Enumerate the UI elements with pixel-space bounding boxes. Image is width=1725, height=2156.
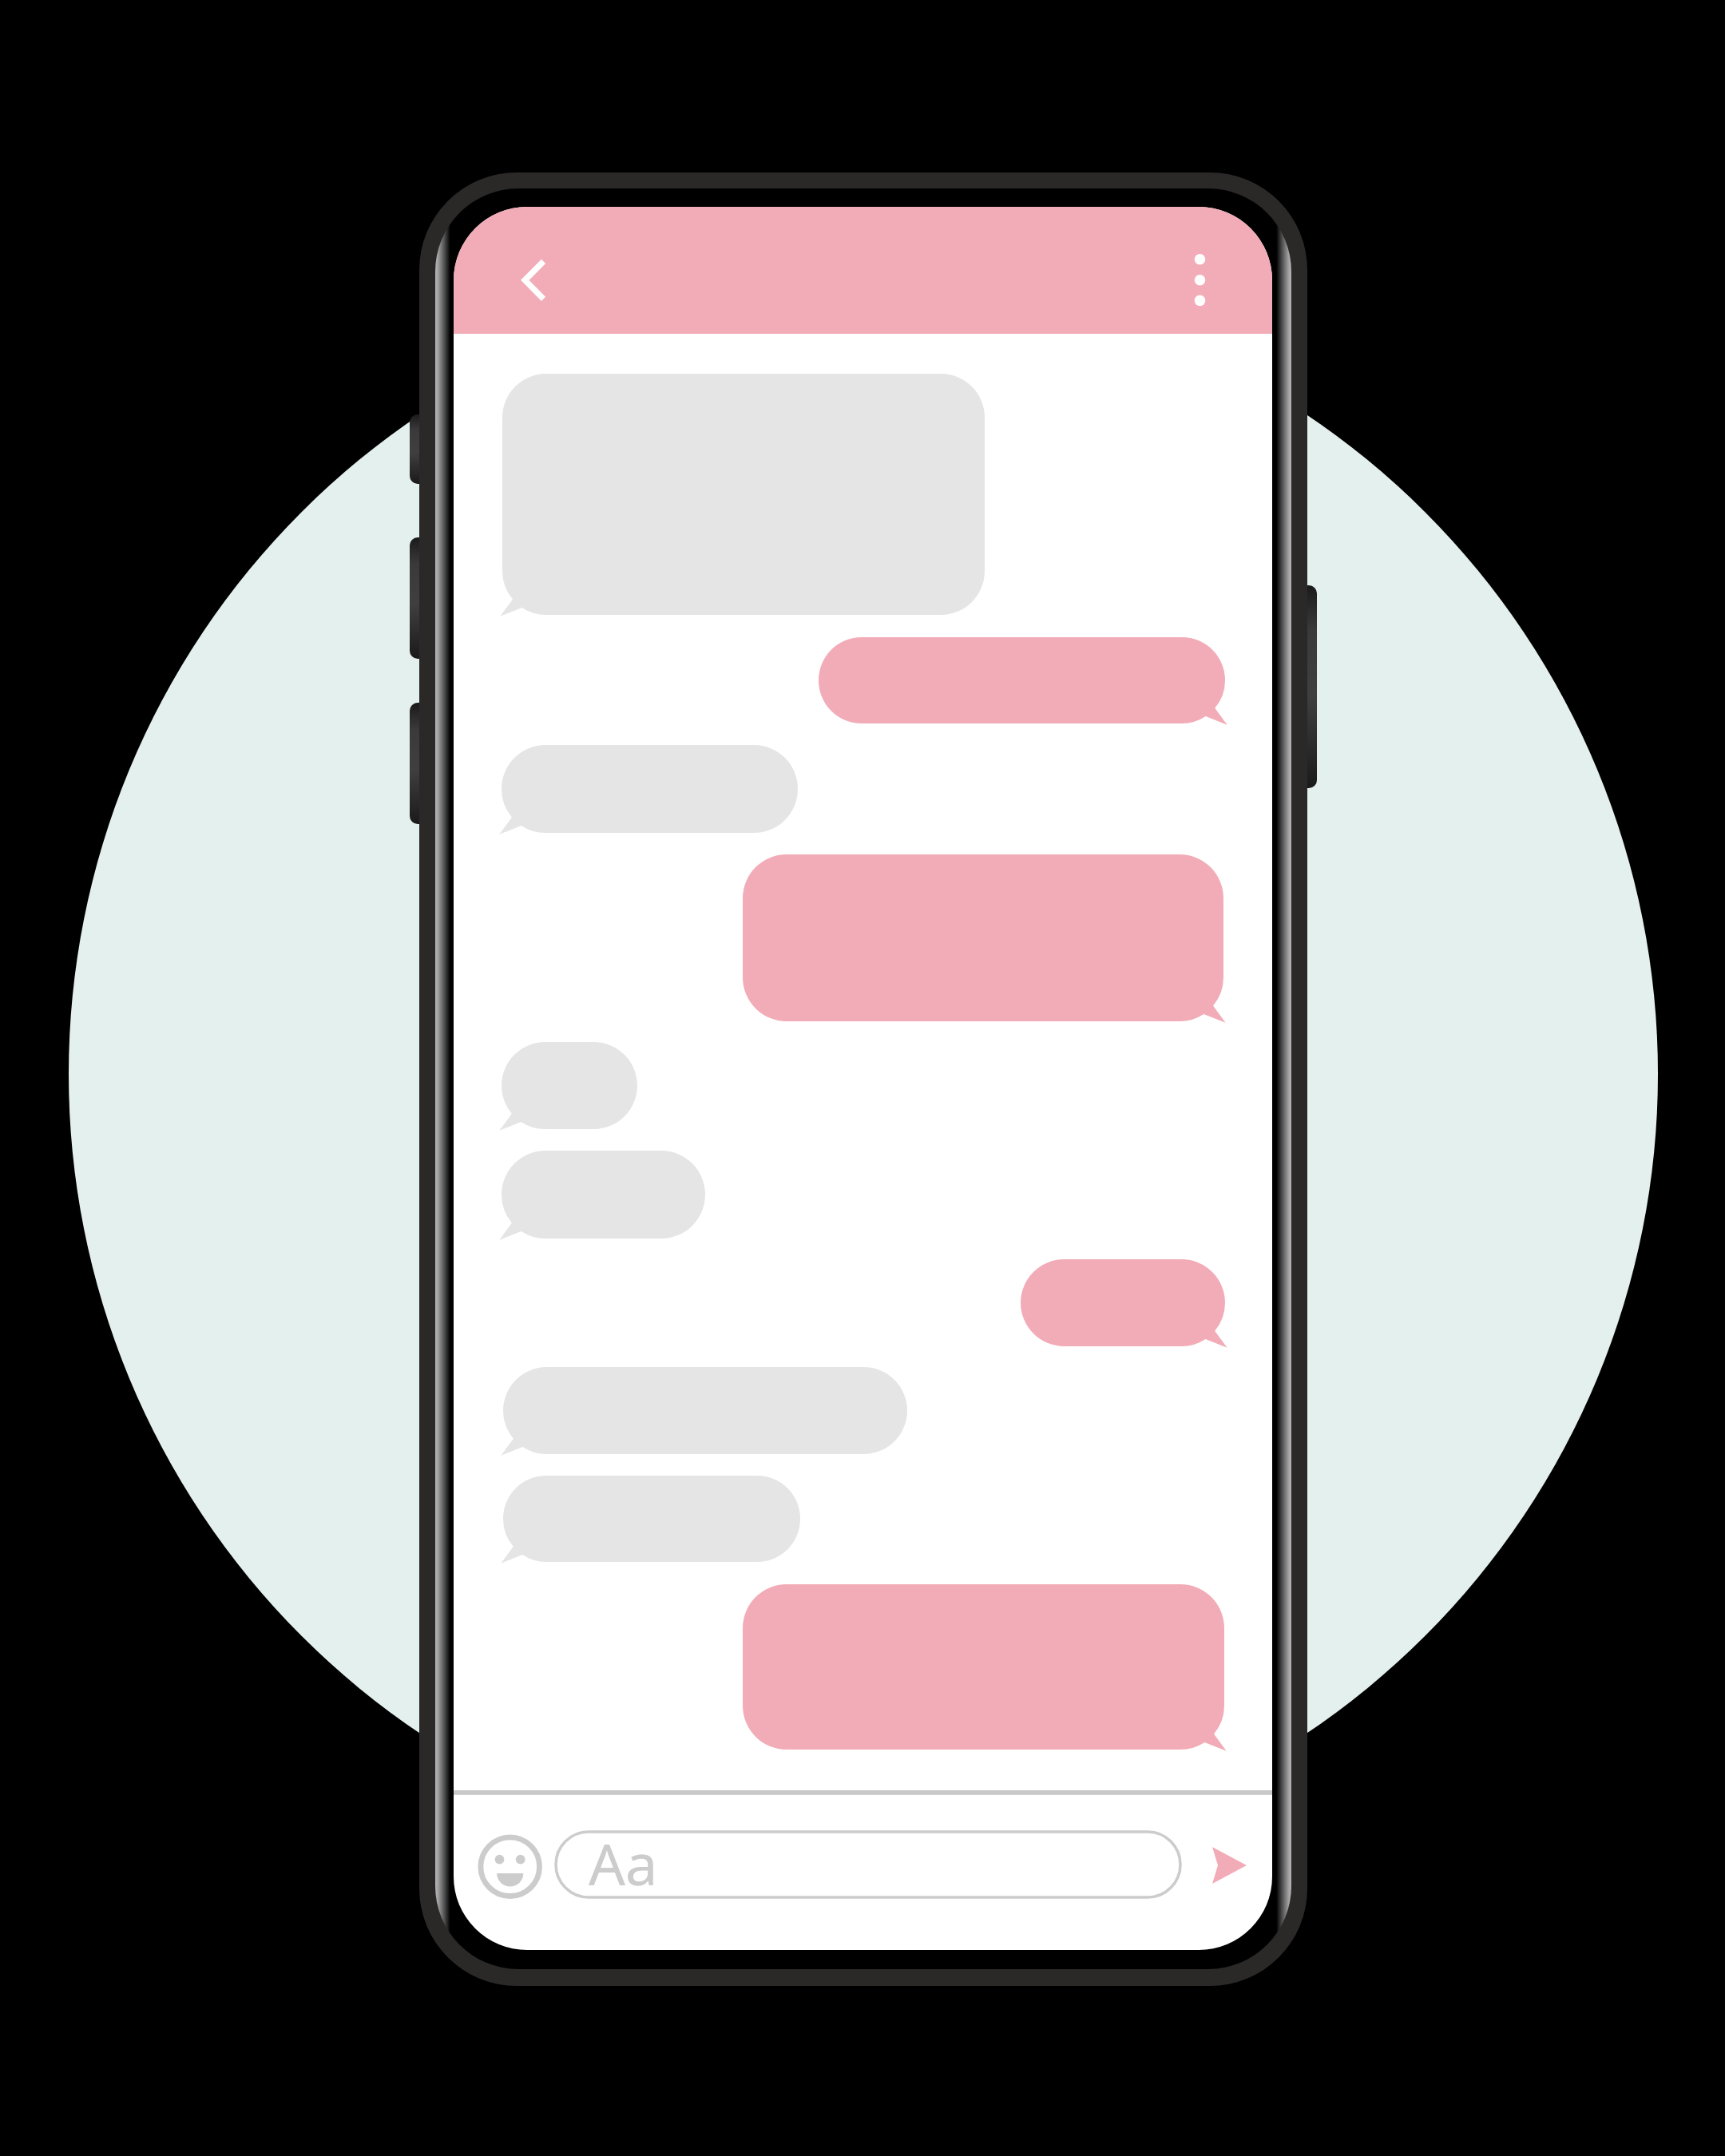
button[interactable]: Message input	[556, 1831, 1180, 1900]
button[interactable]: Back	[494, 240, 581, 319]
staticText: Aa	[589, 1824, 658, 1902]
button[interactable]: Send	[1202, 1837, 1262, 1896]
button[interactable]: More options	[1162, 236, 1238, 323]
button[interactable]: Emoji	[476, 1833, 543, 1900]
